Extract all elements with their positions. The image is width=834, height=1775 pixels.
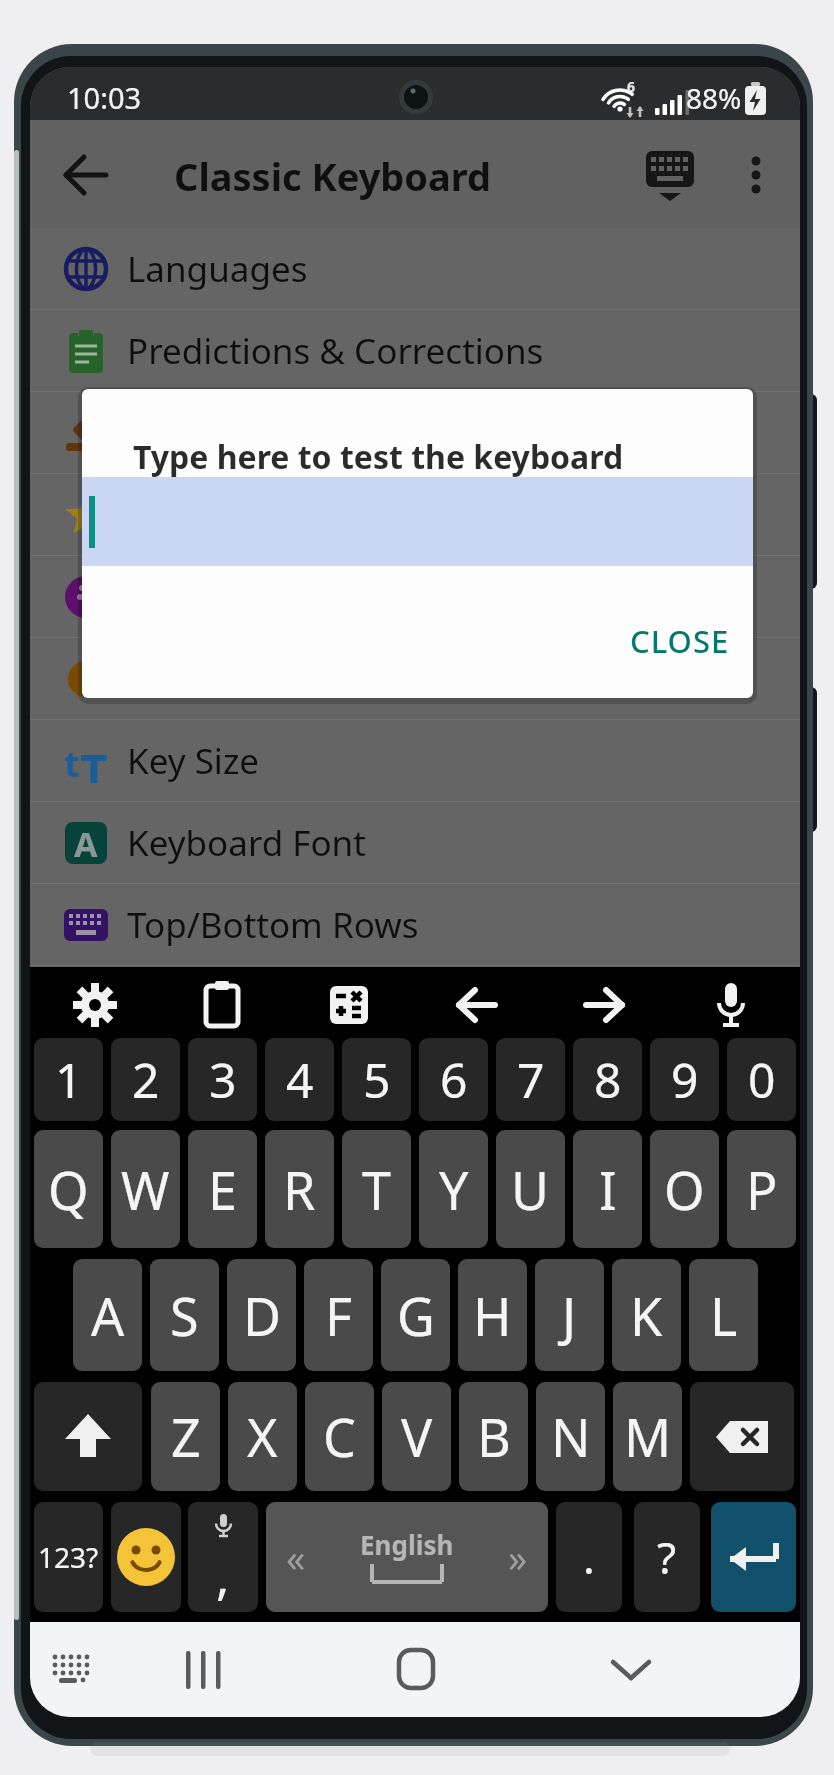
staticText: Top/Bottom Rows xyxy=(127,901,419,949)
button[interactable]: CLOSE xyxy=(618,612,742,670)
staticText: Key Size xyxy=(127,737,260,785)
staticText: C xyxy=(323,1401,356,1472)
button[interactable]: 2 xyxy=(111,1038,180,1121)
button[interactable]: R xyxy=(265,1130,334,1248)
button[interactable]: A xyxy=(30,802,800,884)
staticText: 7 xyxy=(517,1047,545,1112)
button[interactable]: J xyxy=(535,1259,604,1371)
staticText: O xyxy=(664,1154,705,1225)
button[interactable] xyxy=(691,977,771,1033)
button[interactable]: Y xyxy=(419,1130,488,1248)
button[interactable]: « xyxy=(266,1502,548,1612)
staticText: V xyxy=(401,1401,433,1472)
button[interactable]: L xyxy=(689,1259,758,1371)
button[interactable]: 9 xyxy=(650,1038,719,1121)
staticText: H xyxy=(473,1280,512,1351)
staticText: J xyxy=(562,1280,577,1351)
button[interactable]: H xyxy=(458,1259,527,1371)
button[interactable]: 3 xyxy=(188,1038,257,1121)
button[interactable] xyxy=(44,1642,100,1698)
button[interactable] xyxy=(564,977,644,1033)
button[interactable]: I xyxy=(573,1130,642,1248)
staticText: 0 xyxy=(748,1047,776,1112)
button[interactable]: U xyxy=(496,1130,565,1248)
staticText: 3 xyxy=(209,1047,237,1112)
button[interactable]: X xyxy=(228,1382,297,1491)
button[interactable]: A xyxy=(73,1259,142,1371)
button[interactable]: T xyxy=(342,1130,411,1248)
button[interactable] xyxy=(309,977,389,1033)
button[interactable] xyxy=(30,392,800,474)
button[interactable] xyxy=(56,145,116,205)
button[interactable] xyxy=(55,977,135,1033)
button[interactable]: 6 xyxy=(419,1038,488,1121)
button[interactable] xyxy=(711,1502,796,1612)
button[interactable]: B xyxy=(459,1382,528,1491)
button[interactable]: Languages xyxy=(30,228,800,310)
button[interactable]: ? xyxy=(634,1502,700,1612)
button[interactable]: . xyxy=(556,1502,622,1612)
button[interactable]: W xyxy=(111,1130,180,1248)
staticText: Predictions & Corrections xyxy=(127,327,544,375)
staticText: U xyxy=(511,1154,550,1225)
staticText: Type here to test the keyboard xyxy=(133,435,624,479)
staticText: K xyxy=(630,1280,663,1351)
button[interactable] xyxy=(30,474,800,556)
button[interactable]: , xyxy=(188,1502,258,1612)
button[interactable]: G xyxy=(381,1259,450,1371)
button[interactable] xyxy=(82,477,753,566)
staticText: F xyxy=(325,1280,352,1351)
button[interactable] xyxy=(173,1642,233,1698)
staticText: Languages xyxy=(127,245,308,293)
staticText: 1 xyxy=(55,1047,83,1112)
staticText: T xyxy=(362,1154,391,1225)
button[interactable]: D xyxy=(227,1259,296,1371)
staticText: Keyboard Font xyxy=(127,819,366,867)
staticText: G xyxy=(397,1280,435,1351)
button[interactable]: S xyxy=(150,1259,219,1371)
button[interactable]: V xyxy=(382,1382,451,1491)
staticText: 9 xyxy=(671,1047,699,1112)
button[interactable]: Q xyxy=(34,1130,103,1248)
button[interactable] xyxy=(34,1382,142,1491)
button[interactable] xyxy=(690,1382,794,1491)
staticText: R xyxy=(283,1154,316,1225)
staticText: Classic Keyboard xyxy=(174,150,492,200)
button[interactable]: 5 xyxy=(342,1038,411,1121)
staticText: T xyxy=(80,739,108,783)
button[interactable] xyxy=(387,1642,447,1698)
staticText: English xyxy=(360,1527,454,1562)
button[interactable] xyxy=(726,145,786,205)
button[interactable]: K xyxy=(612,1259,681,1371)
button[interactable]: F xyxy=(304,1259,373,1371)
button[interactable]: P xyxy=(727,1130,796,1248)
button[interactable]: 8 xyxy=(573,1038,642,1121)
button[interactable] xyxy=(30,638,800,720)
button[interactable] xyxy=(182,977,262,1033)
button[interactable]: C xyxy=(305,1382,374,1491)
button[interactable]: 1 xyxy=(34,1038,103,1121)
button[interactable]: E xyxy=(188,1130,257,1248)
button[interactable]: 0 xyxy=(727,1038,796,1121)
button[interactable]: t xyxy=(30,720,800,802)
staticText: CLOSE xyxy=(630,620,730,662)
button[interactable]: 123? xyxy=(34,1502,103,1612)
staticText: B xyxy=(477,1401,511,1472)
button[interactable]: Z xyxy=(151,1382,220,1491)
button[interactable] xyxy=(638,140,702,210)
button[interactable]: 4 xyxy=(265,1038,334,1121)
button[interactable]: Predictions & Corrections xyxy=(30,310,800,392)
button[interactable]: M xyxy=(613,1382,682,1491)
staticText: W xyxy=(121,1154,170,1225)
button[interactable]: O xyxy=(650,1130,719,1248)
staticText: « xyxy=(286,1531,306,1583)
staticText: A xyxy=(74,821,98,865)
staticText: D xyxy=(243,1280,281,1351)
button[interactable] xyxy=(601,1642,661,1698)
button[interactable] xyxy=(111,1502,181,1612)
button[interactable]: 7 xyxy=(496,1038,565,1121)
button[interactable] xyxy=(30,556,800,638)
button[interactable] xyxy=(437,977,517,1033)
button[interactable]: N xyxy=(536,1382,605,1491)
button[interactable]: Top/Bottom Rows xyxy=(30,884,800,966)
